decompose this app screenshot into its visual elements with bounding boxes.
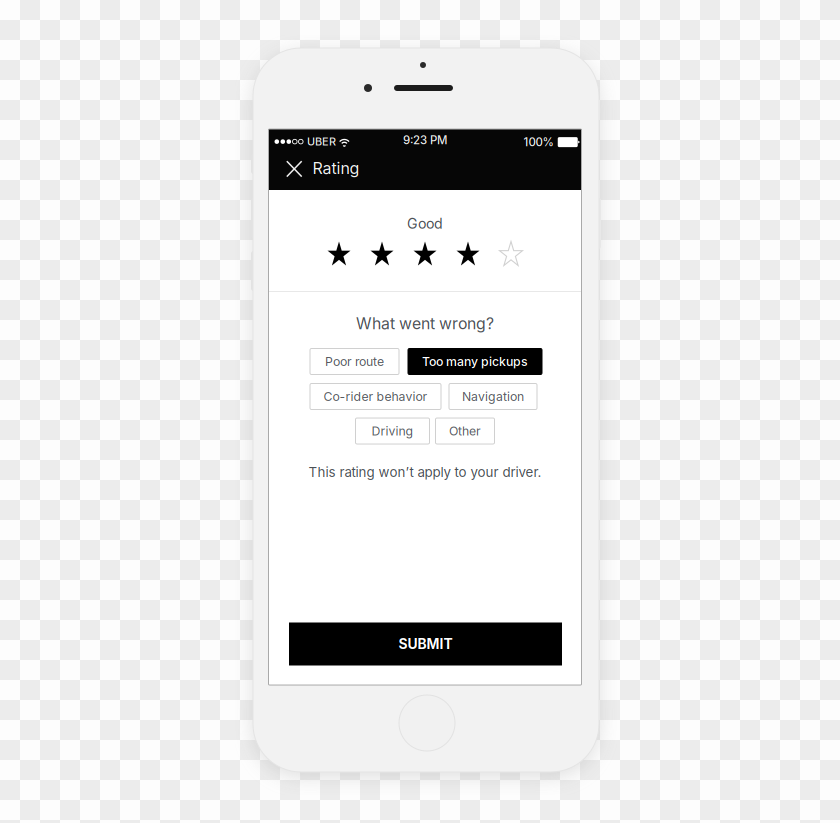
staticText: Poor route (325, 354, 384, 369)
staticText: Too many pickups (422, 354, 528, 369)
button[interactable]: Rate 3 star (413, 241, 436, 265)
button[interactable]: Rate 5 star (499, 241, 522, 265)
staticText: Co-rider behavior (323, 389, 427, 404)
staticText: What went wrong? (356, 314, 494, 333)
staticText: 9:23 PM (403, 133, 447, 147)
button[interactable]: Navigation (449, 383, 537, 409)
button[interactable]: SUBMIT (289, 622, 562, 665)
button[interactable]: Poor route (310, 348, 399, 374)
button[interactable]: Rate 4 star (456, 241, 479, 265)
staticText: Other (449, 424, 481, 438)
button[interactable]: Co-rider behavior (310, 383, 441, 409)
staticText: Navigation (462, 389, 524, 404)
button[interactable]: Too many pickups (408, 348, 542, 374)
button[interactable]: Driving (355, 418, 429, 444)
staticText: SUBMIT (398, 636, 452, 652)
staticText: Good (407, 215, 443, 232)
button[interactable]: Rate 1 star (327, 241, 350, 265)
button[interactable]: Close (279, 153, 309, 184)
staticText: 100% (523, 135, 553, 149)
staticText: Rating (312, 158, 359, 178)
button[interactable]: Rate 2 star (370, 241, 393, 265)
staticText: This rating won’t apply to your driver. (308, 464, 541, 480)
staticText: UBER (307, 135, 336, 148)
staticText: Driving (371, 424, 413, 438)
button[interactable]: Other (435, 418, 494, 444)
